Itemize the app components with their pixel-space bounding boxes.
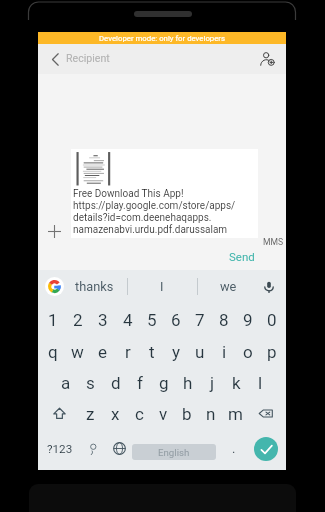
staticText: r — [125, 342, 131, 362]
button[interactable]: we — [197, 270, 260, 303]
staticText: g — [159, 373, 169, 393]
staticText: Free Download This App! https://play.goo… — [73, 188, 236, 236]
button[interactable]: Free Download This App! https://play.goo… — [71, 149, 258, 238]
staticText: 4 — [123, 310, 133, 330]
button[interactable]: j — [200, 367, 224, 398]
button[interactable]: b — [175, 398, 199, 429]
button[interactable]: d — [103, 367, 128, 398]
button[interactable]: 9 — [236, 305, 260, 335]
button[interactable]: ?123 — [42, 427, 77, 470]
staticText: s — [86, 373, 95, 393]
staticText: I — [160, 279, 164, 294]
button[interactable]: x — [103, 398, 127, 429]
staticText: c — [135, 404, 144, 424]
button[interactable]: q — [40, 336, 65, 367]
button[interactable]: v — [151, 398, 175, 429]
staticText: y — [172, 342, 181, 362]
staticText: b — [182, 404, 192, 424]
staticText: ?123 — [47, 442, 73, 456]
staticText: v — [159, 404, 168, 424]
staticText: 9 — [243, 310, 253, 330]
button[interactable]: 4 — [115, 305, 140, 335]
staticText: MMS — [263, 237, 284, 247]
button[interactable]: 5 — [140, 305, 164, 335]
staticText: a — [61, 373, 71, 393]
staticText: 2 — [73, 310, 83, 330]
staticText: o — [243, 342, 253, 362]
button[interactable]: English — [132, 444, 216, 460]
staticText: x — [111, 404, 120, 424]
button[interactable]: r — [115, 336, 140, 367]
button[interactable]: w — [65, 336, 90, 367]
button[interactable]: z — [78, 398, 103, 429]
button[interactable]: i — [212, 336, 236, 367]
button[interactable]: 2 — [65, 305, 90, 335]
staticText: z — [86, 404, 95, 424]
staticText: m — [228, 404, 243, 424]
button[interactable]: thanks — [62, 270, 127, 303]
button[interactable]: Emoji — [80, 427, 106, 470]
button[interactable]: Developer mode: only for developers — [38, 32, 286, 44]
button[interactable]: Send message — [250, 427, 282, 470]
button[interactable]: Backspace — [247, 398, 284, 429]
button[interactable]: I — [127, 270, 197, 303]
button[interactable]: 1 — [40, 305, 65, 335]
staticText: i — [222, 342, 227, 362]
button[interactable]: m — [223, 398, 247, 429]
button[interactable]: e — [90, 336, 115, 367]
staticText: 6 — [171, 310, 181, 330]
staticText: Developer mode: only for developers — [99, 34, 226, 43]
button[interactable]: Voice input — [255, 270, 282, 303]
staticText: Recipient — [66, 52, 110, 64]
staticText: 7 — [195, 310, 205, 330]
staticText: thanks — [75, 279, 114, 294]
button[interactable]: y — [164, 336, 188, 367]
staticText: n — [206, 404, 216, 424]
button[interactable]: 6 — [164, 305, 188, 335]
button[interactable]: p — [260, 336, 284, 367]
staticText: d — [111, 373, 121, 393]
button[interactable]: g — [152, 367, 176, 398]
button[interactable]: c — [127, 398, 151, 429]
staticText: 1 — [48, 310, 58, 330]
button[interactable]: f — [128, 367, 152, 398]
button[interactable]: s — [78, 367, 103, 398]
button[interactable]: Add recipient — [254, 46, 280, 72]
button[interactable]: a — [53, 367, 78, 398]
button[interactable]: Attach — [41, 218, 68, 245]
staticText: Send — [229, 250, 255, 263]
button[interactable]: 7 — [188, 305, 212, 335]
staticText: h — [183, 373, 193, 393]
button[interactable]: u — [188, 336, 212, 367]
staticText: English — [158, 447, 190, 458]
staticText: q — [48, 342, 58, 362]
button[interactable]: Send — [218, 246, 266, 266]
button[interactable]: 8 — [212, 305, 236, 335]
staticText: 0 — [267, 310, 277, 330]
staticText: f — [137, 373, 143, 393]
staticText: l — [258, 373, 263, 393]
staticText: p — [267, 342, 277, 362]
staticText: t — [149, 342, 155, 362]
button[interactable]: Shift — [40, 398, 78, 429]
button[interactable]: k — [224, 367, 248, 398]
staticText: 5 — [147, 310, 157, 330]
staticText: we — [220, 279, 237, 294]
button[interactable]: 3 — [90, 305, 115, 335]
staticText: e — [98, 342, 108, 362]
staticText: k — [232, 373, 241, 393]
button[interactable]: l — [248, 367, 272, 398]
button[interactable]: Google search — [45, 277, 64, 296]
staticText: j — [210, 373, 215, 393]
staticText: u — [195, 342, 205, 362]
button[interactable]: . — [221, 427, 247, 470]
button[interactable]: Change language — [106, 427, 132, 470]
button[interactable]: n — [199, 398, 223, 429]
button[interactable]: 0 — [260, 305, 284, 335]
button[interactable]: o — [236, 336, 260, 367]
staticText: 8 — [219, 310, 229, 330]
button[interactable]: t — [140, 336, 164, 367]
button[interactable]: h — [176, 367, 200, 398]
button[interactable]: Back — [41, 45, 69, 73]
staticText: 3 — [98, 310, 108, 330]
